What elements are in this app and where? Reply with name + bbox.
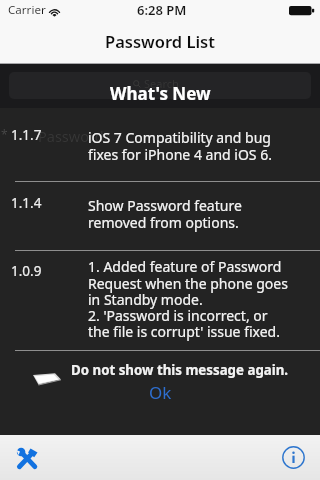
staticText: 1.1.4: [11, 194, 42, 212]
staticText: Show Password feature removed from optio…: [88, 196, 242, 232]
staticText: Carrier: [8, 2, 46, 18]
staticText: iOS 7 Compatibility and bug fixes for iP…: [88, 128, 272, 164]
button[interactable]: Tools: [6, 435, 48, 480]
button[interactable]: Do not show this message again.: [0, 356, 320, 390]
staticText: Do not show this message again.: [71, 361, 289, 379]
staticText: Password List: [105, 30, 215, 52]
staticText: 1. Added feature of Password Request whe…: [88, 257, 288, 341]
button[interactable]: Add password: [276, 20, 320, 64]
staticText: 6:28 PM: [137, 1, 187, 19]
staticText: 1.0.9: [11, 262, 42, 280]
staticText: 1.1.7: [11, 126, 42, 144]
staticText: Ok: [149, 381, 172, 404]
button[interactable]: Info: [272, 435, 314, 480]
button[interactable]: Ok: [119, 378, 202, 407]
staticText: Password: [38, 126, 104, 146]
staticText: What's New: [110, 82, 211, 105]
staticText: *: [1, 126, 8, 142]
staticText: Search: [144, 76, 179, 91]
